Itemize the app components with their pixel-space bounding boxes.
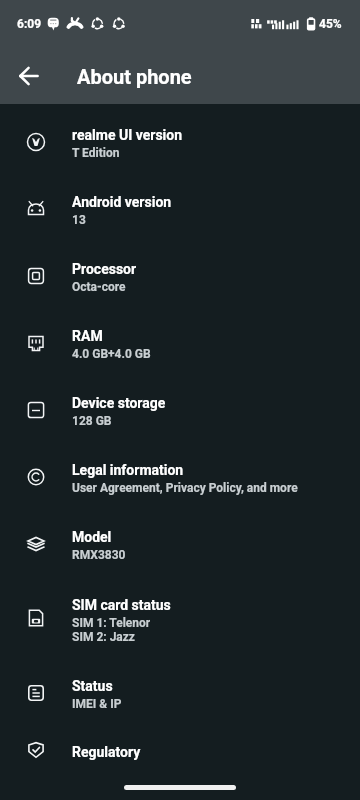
staticText: 4.0 GB+4.0 GB bbox=[72, 347, 151, 361]
staticText: Status bbox=[72, 678, 113, 694]
staticText: RMX3830 bbox=[72, 548, 126, 562]
staticText: 13 bbox=[72, 213, 86, 227]
button[interactable]: Model bbox=[0, 510, 360, 577]
staticText: Legal information bbox=[72, 462, 184, 478]
button[interactable]: Legal information bbox=[0, 443, 360, 510]
button[interactable]: Status bbox=[0, 659, 360, 726]
staticText: SIM card status bbox=[72, 597, 171, 613]
staticText: User Agreement, Privacy Policy, and more bbox=[72, 481, 298, 495]
staticText: Processor bbox=[72, 261, 137, 277]
staticText: 128 GB bbox=[72, 414, 112, 428]
staticText: Octa-core bbox=[72, 280, 126, 294]
staticText: 6:09 bbox=[17, 17, 42, 31]
staticText: Android version bbox=[72, 194, 172, 210]
staticText: 45% bbox=[319, 17, 342, 31]
staticText: Device storage bbox=[72, 395, 166, 411]
button[interactable]: Back bbox=[17, 64, 41, 88]
button[interactable]: Device storage bbox=[0, 376, 360, 443]
staticText: SIM 1: Telenor SIM 2: Jazz bbox=[72, 616, 151, 644]
staticText: RAM bbox=[72, 328, 103, 344]
button[interactable]: RAM bbox=[0, 309, 360, 376]
staticText: T Edition bbox=[72, 146, 120, 160]
staticText: Model bbox=[72, 529, 112, 545]
button[interactable]: SIM card status bbox=[0, 577, 360, 659]
button[interactable]: Regulatory bbox=[0, 726, 360, 778]
staticText: About phone bbox=[77, 65, 192, 88]
staticText: Regulatory bbox=[72, 744, 141, 760]
staticText: realme UI version bbox=[72, 127, 183, 143]
staticText: IMEI & IP bbox=[72, 697, 122, 711]
button[interactable]: Processor bbox=[0, 242, 360, 309]
button[interactable]: realme UI version bbox=[0, 108, 360, 175]
button[interactable]: Android version bbox=[0, 175, 360, 242]
